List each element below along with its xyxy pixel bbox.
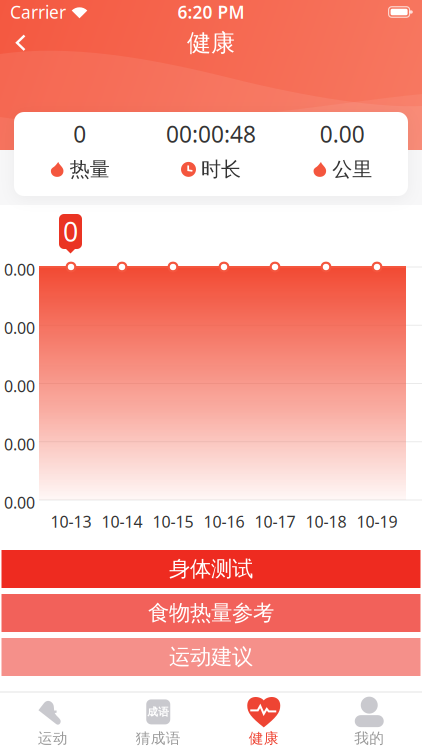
button[interactable]: Back xyxy=(0,26,37,59)
staticText: 成语 xyxy=(147,705,169,718)
staticText: 公里 xyxy=(332,157,372,182)
staticText: 10-13 xyxy=(50,511,91,532)
staticText: 运动 xyxy=(38,729,68,747)
staticText: 10-17 xyxy=(254,511,295,532)
button[interactable]: 运动 xyxy=(0,697,105,747)
button[interactable]: 成语 xyxy=(105,697,211,747)
staticText: 10-19 xyxy=(356,511,397,532)
staticText: 10-16 xyxy=(203,511,244,532)
staticText: 猜成语 xyxy=(136,729,181,747)
staticText: 0.00 xyxy=(4,492,35,513)
staticText: 食物热量参考 xyxy=(148,600,274,626)
staticText: 6:20 PM xyxy=(177,0,244,23)
button[interactable]: 身体测试 xyxy=(0,550,422,588)
button[interactable]: 食物热量参考 xyxy=(0,594,422,632)
staticText: 健康 xyxy=(249,729,279,747)
staticText: 00:00:48 xyxy=(166,119,256,149)
staticText: 0.00 xyxy=(4,434,35,455)
staticText: 时长 xyxy=(201,157,241,182)
staticText: 0.00 xyxy=(320,119,365,149)
staticText: 0 xyxy=(63,214,78,249)
staticText: 0.00 xyxy=(4,317,35,338)
staticText: 热量 xyxy=(70,157,110,182)
staticText: 0.00 xyxy=(4,259,35,280)
staticText: 健康 xyxy=(187,28,235,58)
staticText: 0.00 xyxy=(4,375,35,397)
staticText: Carrier xyxy=(10,0,66,23)
staticText: 运动建议 xyxy=(169,644,253,670)
staticText: 10-18 xyxy=(305,511,346,532)
staticText: 10-14 xyxy=(101,511,142,532)
button[interactable]: 运动建议 xyxy=(0,638,422,676)
staticText: 我的 xyxy=(354,729,384,747)
button[interactable]: 我的 xyxy=(316,697,422,747)
staticText: 0 xyxy=(73,119,86,149)
button[interactable]: 健康 xyxy=(211,697,316,747)
staticText: 10-15 xyxy=(152,511,193,532)
staticText: 身体测试 xyxy=(169,556,253,582)
